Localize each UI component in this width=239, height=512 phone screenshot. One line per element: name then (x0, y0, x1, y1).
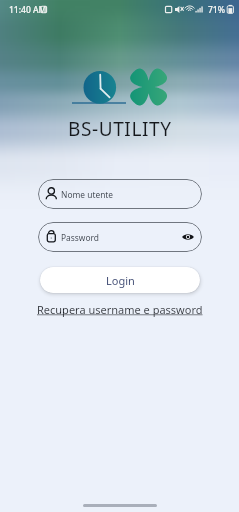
button[interactable]: Nome utente (38, 179, 202, 209)
staticText: Password (61, 232, 99, 243)
button[interactable]: Recupera username e password (37, 302, 203, 317)
staticText: Nome utente (61, 189, 114, 200)
staticText: 71% (208, 4, 225, 16)
button[interactable]: Login (40, 267, 200, 293)
button[interactable]: Password (38, 222, 202, 252)
staticText: Login (106, 273, 135, 288)
staticText: 11:40 AM (9, 4, 47, 16)
staticText: BS-UTILITY (68, 116, 172, 142)
